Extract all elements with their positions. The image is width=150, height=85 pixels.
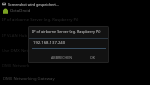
- staticText: IP of airborne Server (eg. Raspberry Pi): [2, 17, 79, 23]
- staticText: DMX Networking Gateway: [3, 76, 55, 82]
- staticText: DMX Network: [2, 63, 30, 69]
- button[interactable]: OK: [88, 54, 98, 61]
- staticText: 192.168.137.240: [33, 40, 66, 46]
- other: Screenshot: [1, 1, 7, 7]
- button[interactable]: ABBRECHEN: [49, 54, 74, 61]
- staticText: OK: [90, 55, 96, 60]
- staticText: IP of airborne Server (eg. Raspberry Pi): [32, 29, 101, 34]
- staticText: Use DMX Network: [2, 48, 38, 54]
- staticText: IP VLAN Hub: [2, 33, 27, 39]
- staticText: ABBRECHEN: [51, 55, 72, 60]
- staticText: OctoDroid: [10, 8, 31, 14]
- staticText: Screenshot wird gespeichert...: [8, 2, 59, 7]
